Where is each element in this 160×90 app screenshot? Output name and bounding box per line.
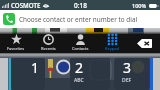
button[interactable]: Contacts: [64, 34, 96, 53]
staticText: Favorites: [7, 46, 25, 51]
staticText: Choose contact or enter number to dial: [19, 15, 138, 24]
staticText: Recents: [41, 46, 56, 51]
button[interactable]: Recents: [32, 34, 64, 53]
staticText: ABC: [74, 77, 84, 84]
button[interactable]: Favorites: [0, 34, 32, 53]
button[interactable]: 3: [114, 58, 150, 90]
staticText: 1: [31, 58, 40, 77]
staticText: 0:18: [74, 1, 87, 10]
staticText: Keypad: [105, 46, 119, 51]
button[interactable]: Choose contact or enter number to dial: [0, 10, 160, 28]
staticText: 100%: [132, 2, 147, 9]
staticText: Contacts: [72, 46, 89, 51]
button[interactable]: 2: [70, 58, 110, 90]
button[interactable]: Delete: [128, 34, 160, 53]
staticText: 2: [75, 58, 84, 77]
button[interactable]: 1: [11, 58, 45, 90]
staticText: COSMOTE: [11, 1, 41, 9]
staticText: DEF: [122, 77, 132, 84]
button[interactable]: Keypad: [96, 34, 128, 53]
staticText: 3: [123, 58, 132, 77]
